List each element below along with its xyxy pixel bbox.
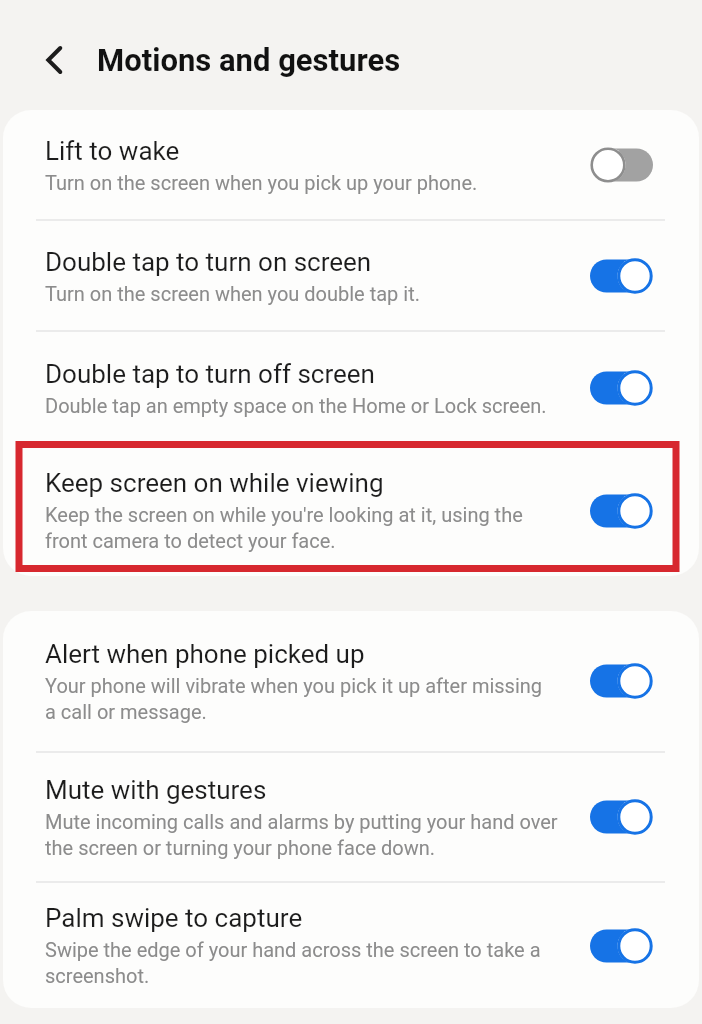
staticText: Keep the screen on while you're looking … — [45, 503, 523, 553]
button[interactable]: Double tap to turn off screen — [3, 332, 699, 443]
staticText: Mute incoming calls and alarms by puttin… — [45, 810, 558, 860]
staticText: Your phone will vibrate when you pick it… — [45, 674, 543, 724]
staticText: Double tap to turn on screen — [45, 247, 372, 277]
staticText: Lift to wake — [45, 136, 180, 166]
button[interactable]: Alert when phone picked up — [3, 611, 699, 751]
button[interactable] — [590, 663, 653, 699]
button[interactable] — [590, 493, 653, 529]
button[interactable]: Keep screen on while viewing — [3, 445, 699, 576]
staticText: Mute with gestures — [45, 775, 267, 805]
staticText: Alert when phone picked up — [45, 639, 365, 669]
button[interactable]: Mute with gestures — [3, 753, 699, 881]
button[interactable] — [590, 799, 653, 835]
button[interactable] — [590, 147, 653, 183]
staticText: Motions and gestures — [97, 42, 401, 78]
button[interactable]: Double tap to turn on screen — [3, 221, 699, 330]
staticText: Swipe the edge of your hand across the s… — [45, 938, 541, 988]
button[interactable] — [590, 370, 653, 406]
button[interactable]: Lift to wake — [3, 110, 699, 219]
staticText: Double tap an empty space on the Home or… — [45, 394, 547, 417]
staticText: Turn on the screen when you double tap i… — [45, 282, 420, 305]
button[interactable] — [31, 36, 79, 84]
staticText: Turn on the screen when you pick up your… — [45, 171, 478, 194]
button[interactable] — [590, 258, 653, 294]
button[interactable] — [590, 928, 653, 964]
button[interactable]: Palm swipe to capture — [3, 883, 699, 1008]
staticText: Double tap to turn off screen — [45, 359, 375, 389]
staticText: Keep screen on while viewing — [45, 468, 384, 498]
staticText: Palm swipe to capture — [45, 903, 303, 933]
